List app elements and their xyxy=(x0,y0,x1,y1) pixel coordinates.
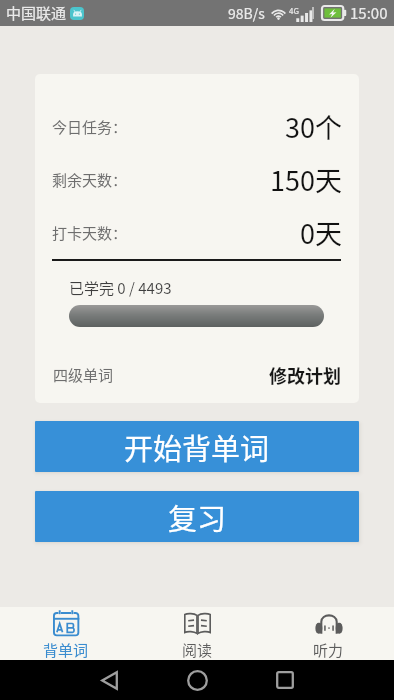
staticText: 复习 xyxy=(168,496,227,538)
staticText: 0天 xyxy=(300,213,342,252)
button[interactable]: Recents xyxy=(263,660,307,700)
staticText: 今日任务： xyxy=(52,116,128,138)
staticText: 4G xyxy=(289,5,299,17)
staticText: 开始背单词 xyxy=(124,426,270,468)
button[interactable]: 修改计划 xyxy=(269,362,341,388)
staticText: 已学完 0 / 4493 xyxy=(69,277,172,299)
staticText: 150天 xyxy=(270,160,342,199)
staticText: 剩余天数： xyxy=(52,169,128,191)
button[interactable]: 听力 xyxy=(263,607,394,660)
staticText: 打卡天数： xyxy=(52,222,128,244)
staticText: 阅读 xyxy=(182,639,213,660)
button[interactable]: 开始背单词 xyxy=(35,421,359,472)
button[interactable]: Home xyxy=(175,660,219,700)
button[interactable]: 复习 xyxy=(35,491,359,542)
staticText: 30个 xyxy=(285,107,342,146)
staticText: 四级单词 xyxy=(53,364,114,386)
staticText: 背单词 xyxy=(43,639,89,660)
staticText: 98B/s xyxy=(228,3,265,23)
button[interactable]: 阅读 xyxy=(132,607,263,660)
button[interactable]: 背单词 xyxy=(0,607,132,660)
staticText: 听力 xyxy=(313,639,344,660)
staticText: 中国联通 xyxy=(6,2,67,24)
button[interactable]: Back xyxy=(87,660,131,700)
staticText: 15:00 xyxy=(350,2,388,24)
